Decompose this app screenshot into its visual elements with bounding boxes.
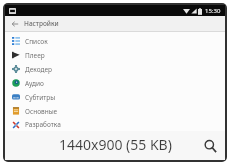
staticText: Основные xyxy=(25,107,58,116)
button[interactable]: Аудио xyxy=(5,76,225,90)
staticText: 15:30 xyxy=(205,7,221,15)
staticText: Список xyxy=(25,37,48,46)
button[interactable]: Основные xyxy=(5,104,225,118)
staticText: Декодер xyxy=(25,65,52,74)
button[interactable]: Плеер xyxy=(5,48,225,62)
staticText: Плеер xyxy=(25,51,45,60)
staticText: Настройки xyxy=(24,19,59,28)
button[interactable]: Back xyxy=(5,16,24,31)
staticText: Аудио xyxy=(25,79,44,88)
staticText: Субтитры xyxy=(25,93,56,102)
button[interactable]: Список xyxy=(5,34,225,48)
button[interactable]: Декодер xyxy=(5,62,225,76)
staticText: Разработка xyxy=(25,120,61,129)
staticText: 1440x900 (55 KB) xyxy=(59,135,172,154)
button[interactable]: Search xyxy=(201,137,219,155)
button[interactable]: Субтитры xyxy=(5,90,225,104)
button[interactable]: Разработка xyxy=(5,118,225,131)
